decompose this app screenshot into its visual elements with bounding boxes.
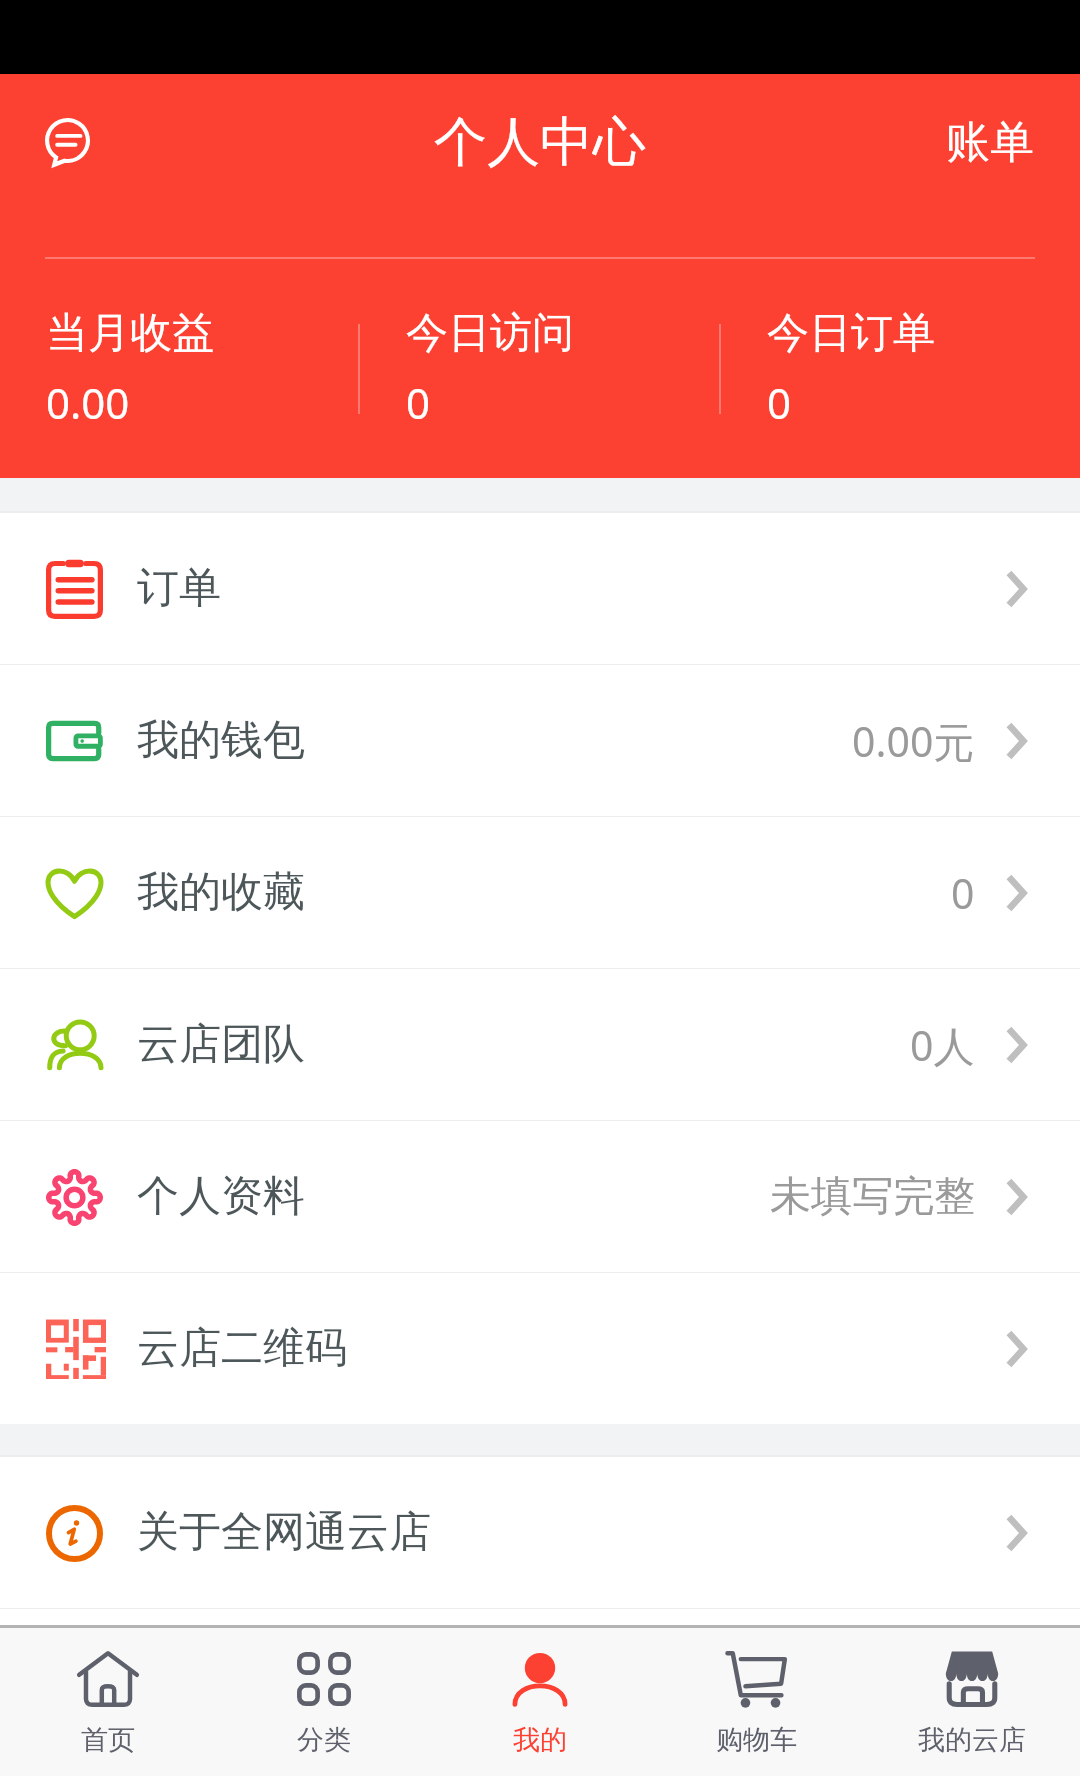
staticText: 我的云店 [918, 1723, 1026, 1757]
staticText: 0.00 [46, 374, 130, 431]
staticText: 今日订单 [767, 307, 935, 360]
button[interactable]: 我的收藏 [0, 817, 1080, 968]
staticText: 0 [406, 374, 431, 431]
button[interactable]: 我的 [432, 1628, 648, 1776]
staticText: 分类 [297, 1723, 351, 1757]
staticText: 0人 [910, 1017, 975, 1073]
button[interactable]: 订单 [0, 513, 1080, 664]
staticText: 云店二维码 [137, 1322, 347, 1375]
staticText: 0.00元 [852, 713, 975, 769]
staticText: 账单 [946, 115, 1034, 170]
button[interactable]: 首页 [0, 1628, 216, 1776]
staticText: 个人中心 [434, 109, 646, 176]
staticText: 未填写完整 [770, 1171, 975, 1223]
staticText: 购物车 [716, 1723, 797, 1757]
button[interactable]: 购物车 [648, 1628, 864, 1776]
button[interactable]: 我的钱包 [0, 665, 1080, 816]
button[interactable]: Messages [22, 97, 112, 187]
button[interactable]: 分类 [216, 1628, 432, 1776]
button[interactable]: 云店二维码 [0, 1273, 1080, 1424]
staticText: 个人资料 [137, 1170, 305, 1223]
staticText: 首页 [81, 1723, 135, 1757]
staticText: 我的钱包 [137, 714, 305, 767]
staticText: 今日访问 [406, 307, 574, 360]
button[interactable]: 我的云店 [864, 1628, 1080, 1776]
staticText: 我的 [513, 1723, 567, 1757]
staticText: 当月收益 [46, 307, 214, 360]
button[interactable]: 关于全网通云店 [0, 1457, 1080, 1608]
button[interactable]: 个人资料 [0, 1121, 1080, 1272]
staticText: 我的收藏 [137, 866, 305, 919]
button[interactable]: 云店团队 [0, 969, 1080, 1120]
staticText: 关于全网通云店 [137, 1506, 431, 1559]
staticText: 订单 [137, 562, 221, 615]
staticText: 0 [951, 865, 975, 921]
button[interactable]: 账单 [918, 93, 1080, 192]
staticText: 云店团队 [137, 1018, 305, 1071]
staticText: 0 [767, 374, 792, 431]
